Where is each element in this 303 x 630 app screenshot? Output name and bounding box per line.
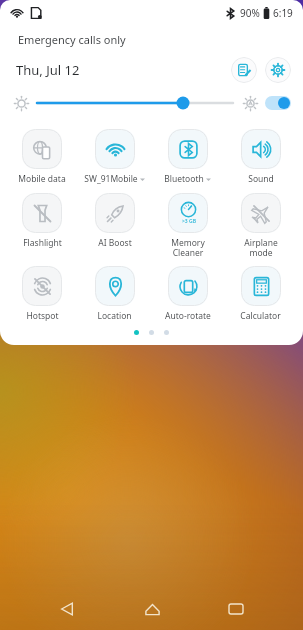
button[interactable]: Back xyxy=(50,592,84,626)
button[interactable]: Mobile data xyxy=(6,127,78,185)
button[interactable]: Hotspot xyxy=(6,264,78,322)
staticText: >3 GB xyxy=(182,218,196,225)
button[interactable]: Flashlight xyxy=(6,191,78,249)
staticText: 90% xyxy=(240,6,260,20)
button[interactable]: Auto-rotate xyxy=(151,264,224,322)
button[interactable]: Auto brightness toggle xyxy=(265,96,291,110)
staticText: Auto-rotate xyxy=(165,310,211,322)
staticText: Airplane mode xyxy=(244,237,278,258)
button[interactable]: Edit quick settings xyxy=(231,57,257,83)
staticText: SW_91Mobile xyxy=(84,173,138,185)
button[interactable] xyxy=(37,93,233,113)
button[interactable]: Calculator xyxy=(224,264,297,322)
button[interactable]: Recents xyxy=(219,592,253,626)
button[interactable]: Sound xyxy=(224,127,297,185)
staticText: Hotspot xyxy=(26,310,59,322)
button[interactable]: >3 GB xyxy=(151,191,224,258)
button[interactable]: Settings xyxy=(265,57,291,83)
staticText: 6:19 xyxy=(273,6,293,20)
button[interactable]: Home xyxy=(135,592,169,626)
staticText: Sound xyxy=(248,173,274,185)
staticText: Mobile data xyxy=(18,173,66,185)
staticText: Calculator xyxy=(240,310,281,322)
button[interactable]: Location xyxy=(78,264,151,322)
button[interactable]: AI Boost xyxy=(78,191,151,249)
button[interactable]: Auto brightness xyxy=(243,96,258,111)
staticText: Location xyxy=(97,310,132,322)
button[interactable]: SW_91Mobile xyxy=(78,127,151,185)
staticText: Emergency calls only xyxy=(18,32,126,47)
staticText: Bluetooth xyxy=(164,173,204,185)
staticText: Flashlight xyxy=(23,237,62,249)
button[interactable]: Bluetooth xyxy=(151,127,224,185)
staticText: Thu, Jul 12 xyxy=(16,61,80,79)
button[interactable]: Airplane mode xyxy=(224,191,297,258)
staticText: AI Boost xyxy=(98,237,132,249)
staticText: Memory Cleaner xyxy=(171,237,205,258)
button[interactable]: Brightness xyxy=(14,96,29,111)
